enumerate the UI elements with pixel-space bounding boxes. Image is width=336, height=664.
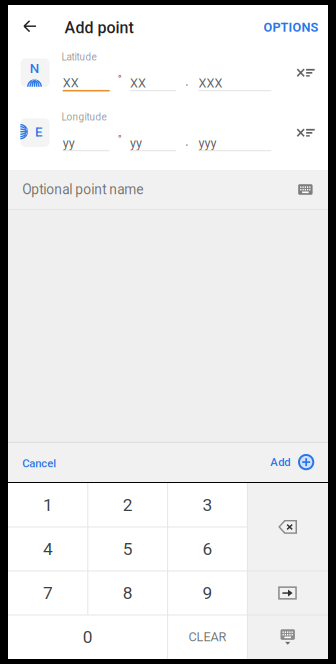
staticText: °	[118, 73, 122, 85]
staticText: Add	[270, 455, 290, 469]
staticText: .	[185, 134, 188, 149]
button[interactable]: 0	[8, 615, 168, 659]
staticText: 9	[202, 583, 212, 603]
button[interactable]: Longitude hemisphere	[21, 118, 50, 147]
staticText: Longitude	[62, 111, 107, 123]
staticText: yy	[130, 136, 142, 151]
button[interactable]: Next field	[247, 571, 328, 615]
staticText: .	[185, 74, 188, 89]
button[interactable]: 5	[88, 527, 168, 571]
staticText: 0	[83, 627, 93, 647]
button[interactable]: 3	[168, 483, 247, 527]
button[interactable]: 2	[88, 483, 168, 527]
button[interactable]: CLEAR	[168, 615, 247, 659]
staticText: XX	[130, 76, 146, 91]
staticText: OPTIONS	[263, 20, 318, 35]
button[interactable]: OPTIONS	[258, 6, 324, 48]
staticText: 8	[123, 583, 133, 603]
button[interactable]: Add	[260, 442, 324, 482]
button[interactable]: Optional point name	[8, 170, 328, 209]
staticText: Latitude	[62, 51, 97, 63]
staticText: 2	[123, 495, 133, 515]
button[interactable]: Clear Latitude	[287, 54, 325, 92]
button[interactable]: Latitude hemisphere	[21, 58, 50, 87]
staticText: 6	[202, 539, 212, 559]
staticText: Add point	[64, 18, 133, 37]
button[interactable]: XX	[63, 76, 110, 92]
staticText: CLEAR	[188, 630, 226, 644]
staticText: °	[118, 133, 122, 145]
staticText: XX	[63, 75, 79, 90]
staticText: Cancel	[22, 457, 56, 470]
staticText: XXX	[198, 76, 222, 91]
staticText: 1	[43, 495, 53, 515]
button[interactable]: 9	[168, 571, 247, 615]
button[interactable]: 1	[8, 483, 88, 527]
button[interactable]: Switch keyboard	[247, 615, 328, 659]
staticText: Optional point name	[22, 181, 143, 198]
staticText: 3	[202, 495, 212, 515]
staticText: 7	[43, 583, 53, 603]
button[interactable]: 6	[168, 527, 247, 571]
button[interactable]: yyy	[198, 136, 271, 152]
staticText: E	[35, 124, 43, 140]
staticText: yy	[63, 136, 75, 151]
staticText: 5	[123, 539, 133, 559]
button[interactable]: XXX	[198, 76, 271, 92]
button[interactable]: Clear Longitude	[287, 114, 325, 152]
button[interactable]: Cancel	[10, 443, 68, 483]
button[interactable]: yy	[130, 136, 176, 152]
button[interactable]: Delete	[247, 483, 328, 571]
button[interactable]: 4	[8, 527, 88, 571]
button[interactable]: yy	[63, 136, 110, 152]
staticText: 4	[43, 539, 53, 559]
button[interactable]: Back	[8, 5, 50, 47]
button[interactable]: XX	[130, 76, 176, 92]
button[interactable]: 7	[8, 571, 88, 615]
staticText: N	[30, 61, 39, 76]
staticText: yyy	[198, 136, 216, 151]
button[interactable]: 8	[88, 571, 168, 615]
